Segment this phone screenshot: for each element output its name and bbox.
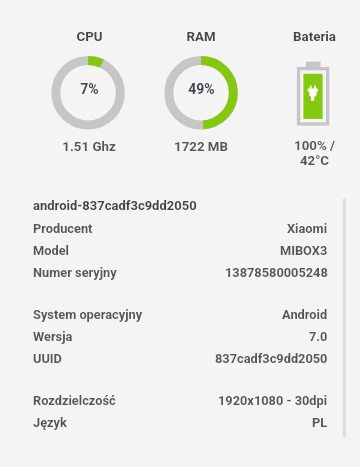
staticText: Wersja: [33, 329, 73, 344]
staticText: UUID: [33, 351, 62, 366]
staticText: 837cadf3c9dd2050: [215, 351, 328, 366]
staticText: 7%: [80, 81, 99, 97]
staticText: Model: [33, 243, 69, 258]
staticText: PL: [312, 415, 328, 430]
staticText: 49%: [188, 81, 215, 97]
staticText: Xiaomi: [287, 221, 328, 236]
staticText: MIBOX3: [280, 243, 328, 258]
staticText: Producent: [33, 221, 93, 236]
button[interactable]: Rozdzielczość: [33, 389, 328, 411]
button[interactable]: System operacyjny: [33, 303, 328, 325]
button[interactable]: CPU usage: [51, 56, 125, 130]
staticText: android-837cadf3c9dd2050: [33, 198, 197, 213]
staticText: Rozdzielczość: [33, 393, 116, 408]
button[interactable]: Numer seryjny: [33, 261, 328, 283]
button[interactable]: android-837cadf3c9dd2050: [33, 198, 328, 220]
staticText: RAM: [186, 29, 216, 45]
staticText: Język: [33, 415, 67, 430]
staticText: 1.51 Ghz: [62, 139, 116, 155]
staticText: 100% / 42°C: [294, 138, 335, 168]
button[interactable]: Model: [33, 239, 328, 261]
staticText: Android: [282, 307, 328, 322]
button[interactable]: UUID: [33, 347, 328, 369]
button[interactable]: Wersja: [33, 325, 328, 347]
staticText: System operacyjny: [33, 307, 143, 322]
staticText: 1920x1080 - 30dpi: [218, 393, 328, 408]
staticText: 13878580005248: [225, 265, 328, 280]
staticText: Numer seryjny: [33, 265, 117, 280]
staticText: 7.0: [309, 329, 328, 344]
button[interactable]: Battery: [296, 61, 330, 126]
button[interactable]: Producent: [33, 217, 328, 239]
staticText: CPU: [76, 29, 103, 45]
staticText: Bateria: [293, 29, 336, 45]
button[interactable]: Język: [33, 411, 328, 433]
button[interactable]: RAM usage: [164, 56, 238, 130]
staticText: 1722 MB: [174, 139, 228, 155]
